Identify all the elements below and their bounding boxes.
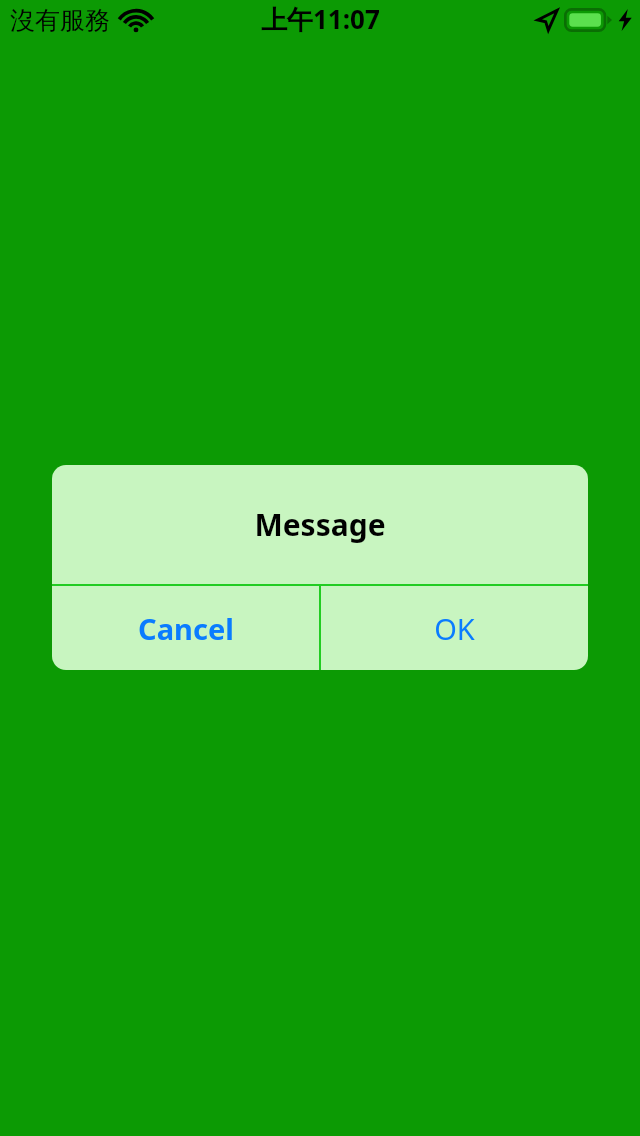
other: Location bbox=[536, 9, 558, 31]
staticText: OK bbox=[434, 609, 475, 648]
staticText: Cancel bbox=[138, 609, 234, 648]
button[interactable]: OK bbox=[321, 586, 588, 670]
staticText: 上午11:07 bbox=[261, 1, 380, 37]
other: Battery bbox=[564, 8, 612, 32]
staticText: Message bbox=[254, 504, 386, 545]
button[interactable]: Cancel bbox=[52, 586, 319, 670]
other: Wi-Fi bbox=[120, 9, 152, 33]
other: Charging bbox=[618, 9, 632, 31]
staticText: 沒有服務 bbox=[10, 5, 110, 36]
